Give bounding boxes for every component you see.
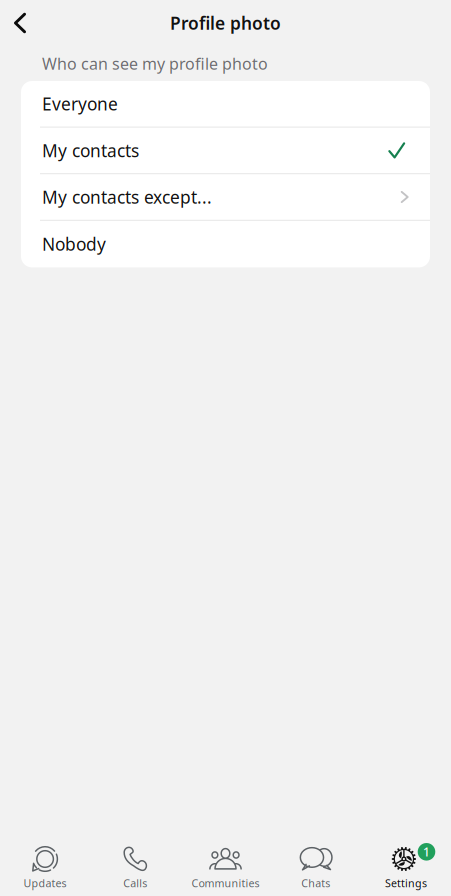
button[interactable]: Communities [180, 846, 271, 888]
button[interactable]: Updates [0, 846, 90, 888]
staticText: Everyone [42, 92, 118, 115]
button[interactable]: Calls [90, 846, 180, 888]
staticText: Who can see my profile photo [42, 53, 268, 74]
staticText: My contacts except... [42, 185, 212, 208]
staticText: Profile photo [170, 11, 281, 34]
staticText: Nobody [42, 233, 106, 256]
staticText: Calls [123, 876, 147, 890]
staticText: Settings [385, 876, 427, 890]
staticText: Updates [24, 876, 67, 890]
staticText: My contacts [42, 139, 139, 162]
button[interactable]: Nobody [21, 221, 430, 267]
button[interactable]: Back [0, 1, 40, 45]
button[interactable]: My contacts [21, 128, 430, 174]
button[interactable]: Everyone [21, 81, 430, 128]
button[interactable]: 1 [361, 846, 451, 888]
staticText: Communities [191, 876, 259, 890]
button[interactable]: My contacts except... [21, 174, 430, 221]
staticText: 1 [423, 844, 430, 860]
staticText: Chats [301, 876, 330, 890]
button[interactable]: Chats [271, 846, 361, 888]
